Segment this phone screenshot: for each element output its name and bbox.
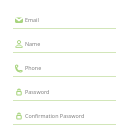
button[interactable]: Confirmation Password <box>13 101 116 125</box>
staticText: Phone <box>25 64 42 71</box>
staticText: Name <box>25 40 41 47</box>
button[interactable]: Phone <box>13 53 116 77</box>
button[interactable]: Email <box>13 5 116 29</box>
button[interactable]: Password <box>13 77 116 101</box>
button[interactable]: Name <box>13 29 116 53</box>
staticText: Email <box>25 16 39 23</box>
staticText: Confirmation Password <box>25 112 85 119</box>
staticText: Password <box>25 88 50 95</box>
